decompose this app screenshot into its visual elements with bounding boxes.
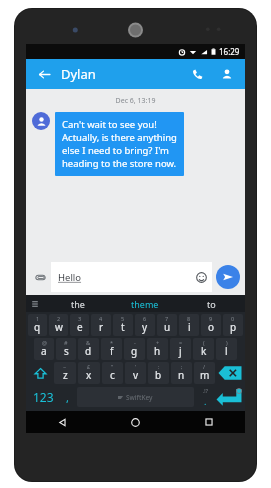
- staticText: 8: [187, 315, 191, 322]
- staticText: s: [64, 344, 69, 358]
- button[interactable]: ,: [59, 385, 75, 409]
- staticText: =: [179, 339, 183, 346]
- button[interactable]: ;: [171, 362, 192, 384]
- button[interactable]: 4: [91, 314, 111, 336]
- button[interactable]: Enter: [216, 387, 242, 407]
- button[interactable]: /: [194, 362, 215, 384]
- button[interactable]: #: [56, 338, 76, 360]
- staticText: j: [179, 344, 182, 358]
- button[interactable]: Back: [26, 411, 99, 433]
- staticText: the: [71, 298, 85, 310]
- staticText: ,: [66, 390, 69, 405]
- staticText: @: [42, 339, 47, 346]
- staticText: i: [188, 320, 191, 334]
- staticText: t: [121, 320, 125, 334]
- button[interactable]: @: [34, 338, 54, 360]
- button[interactable]: 2: [49, 314, 68, 336]
- staticText: #: [64, 339, 68, 346]
- button[interactable]: Hello: [58, 262, 207, 292]
- staticText: h: [154, 344, 161, 358]
- button[interactable]: Keyboard menu: [26, 295, 44, 312]
- button[interactable]: ": [102, 362, 123, 384]
- staticText: £: [87, 363, 91, 370]
- button[interactable]: 8: [179, 314, 199, 336]
- staticText: .!?: [203, 388, 208, 395]
- button[interactable]: =: [170, 338, 191, 360]
- button[interactable]: Space: [77, 387, 194, 407]
- staticText: f: [110, 344, 114, 358]
- button[interactable]: -: [124, 338, 145, 360]
- button[interactable]: ~: [54, 362, 76, 384]
- staticText: Dylan: [61, 65, 96, 83]
- staticText: 4: [99, 315, 103, 322]
- button[interactable]: ': [125, 362, 146, 384]
- button[interactable]: *: [101, 338, 122, 360]
- staticText: 3: [78, 315, 82, 322]
- button[interactable]: ): [216, 338, 237, 360]
- button[interactable]: 5: [113, 314, 133, 336]
- staticText: (: [203, 339, 205, 346]
- button[interactable]: Call: [187, 64, 207, 84]
- staticText: theme: [131, 298, 159, 310]
- staticText: to: [207, 298, 216, 310]
- button[interactable]: 1: [28, 314, 47, 336]
- staticText: k: [201, 344, 207, 358]
- button[interactable]: theme: [111, 295, 178, 312]
- button[interactable]: Shift: [28, 362, 52, 384]
- staticText: o: [208, 320, 215, 334]
- staticText: .: [204, 395, 207, 407]
- button[interactable]: £: [78, 362, 100, 384]
- button[interactable]: .!?: [196, 385, 214, 409]
- staticText: 5: [121, 315, 125, 322]
- button[interactable]: (: [193, 338, 214, 360]
- button[interactable]: Attach: [31, 268, 49, 286]
- staticText: 9: [209, 315, 213, 322]
- button[interactable]: +: [147, 338, 168, 360]
- staticText: 123: [33, 389, 54, 405]
- staticText: v: [133, 368, 139, 382]
- staticText: ;: [181, 363, 183, 370]
- button[interactable]: 0: [223, 314, 243, 336]
- button[interactable]: Send: [216, 265, 240, 289]
- button[interactable]: to: [178, 295, 245, 312]
- staticText: :: [158, 363, 160, 370]
- staticText: *: [110, 339, 114, 346]
- staticText: e: [77, 320, 83, 334]
- staticText: c: [110, 368, 115, 382]
- button[interactable]: Home: [99, 411, 172, 433]
- staticText: u: [164, 320, 171, 334]
- staticText: 2: [57, 315, 61, 322]
- staticText: x: [86, 368, 92, 382]
- staticText: g: [131, 344, 138, 358]
- button[interactable]: the: [44, 295, 111, 312]
- staticText: m: [200, 368, 210, 382]
- staticText: d: [85, 344, 92, 358]
- staticText: ': [135, 363, 137, 370]
- button[interactable]: 9: [201, 314, 221, 336]
- button[interactable]: &: [78, 338, 99, 360]
- button[interactable]: Recent apps: [172, 411, 245, 433]
- staticText: a: [41, 344, 47, 358]
- button[interactable]: 3: [70, 314, 89, 336]
- staticText: l: [225, 344, 228, 358]
- staticText: p: [230, 320, 237, 334]
- button[interactable]: 6: [135, 314, 155, 336]
- staticText: -: [134, 339, 136, 346]
- button[interactable]: :: [148, 362, 169, 384]
- staticText: z: [63, 368, 68, 382]
- staticText: ): [226, 339, 228, 346]
- button[interactable]: 7: [157, 314, 177, 336]
- staticText: &: [86, 339, 91, 346]
- button[interactable]: 123: [27, 385, 59, 409]
- staticText: Dec 6, 13:19: [26, 96, 245, 106]
- staticText: +: [156, 339, 160, 346]
- staticText: q: [34, 320, 41, 334]
- staticText: 16:29: [219, 46, 240, 57]
- staticText: 6: [143, 315, 147, 322]
- button[interactable]: Back: [34, 64, 54, 84]
- button[interactable]: Backspace: [218, 363, 242, 383]
- staticText: Hello: [58, 271, 82, 284]
- staticText: 1: [36, 315, 40, 322]
- staticText: Can't wait to see you! Actually, is ther…: [62, 118, 177, 170]
- button[interactable]: Contact info: [217, 64, 237, 84]
